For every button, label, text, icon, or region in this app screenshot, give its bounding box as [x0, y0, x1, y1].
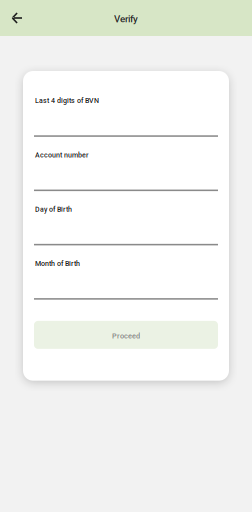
button[interactable]: Back: [4, 5, 30, 31]
staticText: Proceed: [112, 332, 140, 340]
staticText: Last 4 digits of BVN: [35, 96, 99, 105]
staticText: Verify: [114, 13, 138, 25]
button[interactable]: Proceed: [34, 321, 218, 349]
staticText: Month of Birth: [35, 259, 80, 268]
staticText: Day of Birth: [35, 205, 72, 213]
staticText: Account number: [35, 151, 88, 159]
